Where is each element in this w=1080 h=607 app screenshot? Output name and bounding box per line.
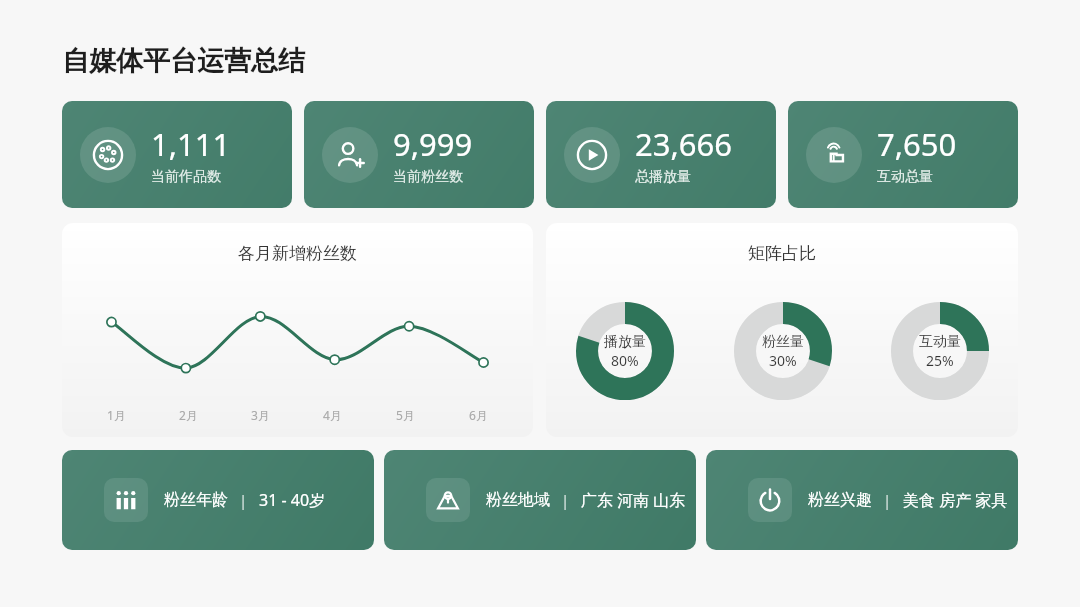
staticText: 粉丝地域 xyxy=(486,490,550,510)
staticText: 播放量 xyxy=(604,333,646,351)
staticText: 广东 河南 山东 xyxy=(581,489,686,511)
staticText: 4月 xyxy=(323,407,342,423)
staticText: 31 - 40岁 xyxy=(259,489,326,511)
staticText: 矩阵占比 xyxy=(748,243,816,264)
staticText: 总播放量 xyxy=(635,168,691,186)
staticText: 各月新增粉丝数 xyxy=(238,243,357,264)
staticText: 互动总量 xyxy=(877,168,933,186)
staticText: 3月 xyxy=(251,407,270,423)
staticText: 粉丝量 xyxy=(762,333,804,351)
staticText: 23,666 xyxy=(635,123,732,165)
staticText: 当前粉丝数 xyxy=(393,168,463,186)
button[interactable]: 1,111 xyxy=(62,101,292,208)
button[interactable]: 互动量 xyxy=(891,302,989,400)
staticText: | xyxy=(239,490,248,510)
staticText: | xyxy=(883,490,892,510)
staticText: 5月 xyxy=(396,407,415,423)
button[interactable]: 播放量 xyxy=(576,302,674,400)
staticText: 1月 xyxy=(107,407,126,423)
button[interactable]: 粉丝地域 xyxy=(384,450,696,550)
staticText: 1,111 xyxy=(151,123,231,165)
button[interactable]: 矩阵占比 xyxy=(546,223,1018,437)
button[interactable]: 9,999 xyxy=(304,101,534,208)
staticText: 7,650 xyxy=(877,123,957,165)
staticText: 6月 xyxy=(469,407,488,423)
button[interactable]: 粉丝兴趣 xyxy=(706,450,1018,550)
staticText: 25% xyxy=(926,351,954,370)
staticText: 互动量 xyxy=(919,333,961,351)
staticText: 30% xyxy=(769,351,797,370)
staticText: 粉丝年龄 xyxy=(164,490,228,510)
staticText: 美食 房产 家具 xyxy=(903,489,1008,511)
staticText: 粉丝兴趣 xyxy=(808,490,872,510)
staticText: 2月 xyxy=(179,407,198,423)
button[interactable]: 粉丝年龄 xyxy=(62,450,374,550)
button[interactable]: 7,650 xyxy=(788,101,1018,208)
button[interactable]: 23,666 xyxy=(546,101,776,208)
staticText: 自媒体平台运营总结 xyxy=(62,44,305,78)
staticText: 当前作品数 xyxy=(151,168,221,186)
staticText: | xyxy=(561,490,570,510)
button[interactable]: 各月新增粉丝数 xyxy=(62,223,533,437)
button[interactable]: 粉丝量 xyxy=(734,302,832,400)
staticText: 9,999 xyxy=(393,123,473,165)
staticText: 80% xyxy=(611,351,639,370)
